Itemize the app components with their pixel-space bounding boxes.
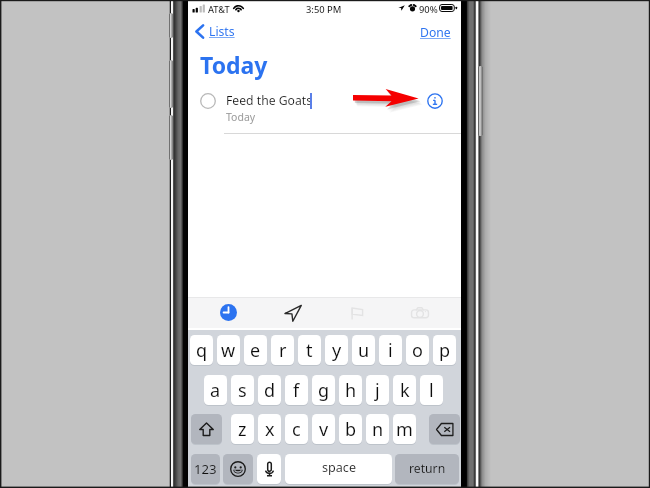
- button[interactable]: space: [285, 454, 392, 484]
- button[interactable]: [429, 414, 460, 444]
- staticText: g: [318, 378, 330, 403]
- staticText: y: [332, 338, 342, 363]
- staticText: space: [322, 459, 356, 476]
- button[interactable]: Remind me at a location: [271, 297, 315, 328]
- button[interactable]: h: [339, 375, 362, 405]
- staticText: h: [345, 378, 357, 403]
- staticText: Today: [200, 49, 268, 80]
- button[interactable]: Lists: [191, 21, 239, 42]
- button[interactable]: m: [393, 414, 416, 444]
- button[interactable]: Add photo: [398, 297, 442, 328]
- button[interactable]: z: [231, 414, 254, 444]
- staticText: i: [388, 338, 393, 363]
- button[interactable]: 123: [191, 454, 220, 484]
- staticText: q: [196, 338, 208, 363]
- button[interactable]: Flag: [335, 297, 379, 328]
- staticText: 3:50 PM: [306, 3, 342, 16]
- button[interactable]: c: [285, 414, 308, 444]
- staticText: m: [396, 417, 413, 442]
- staticText: r: [279, 338, 287, 363]
- button[interactable]: Done: [416, 22, 455, 43]
- staticText: j: [375, 378, 380, 403]
- button[interactable]: r: [271, 335, 294, 365]
- staticText: u: [358, 338, 370, 363]
- button[interactable]: d: [258, 375, 281, 405]
- button[interactable]: j: [366, 375, 389, 405]
- staticText: return: [409, 460, 446, 477]
- staticText: v: [319, 417, 329, 442]
- staticText: Lists: [209, 23, 235, 40]
- staticText: Feed the Goats: [226, 92, 313, 109]
- button[interactable]: v: [312, 414, 335, 444]
- button[interactable]: k: [393, 375, 416, 405]
- staticText: b: [345, 417, 357, 442]
- button[interactable]: o: [406, 335, 429, 365]
- staticText: l: [429, 378, 434, 403]
- staticText: f: [293, 378, 300, 403]
- button[interactable]: y: [325, 335, 348, 365]
- staticText: AT&T: [208, 3, 230, 16]
- staticText: c: [292, 417, 301, 442]
- staticText: p: [439, 338, 451, 363]
- staticText: e: [250, 338, 261, 363]
- button[interactable]: l: [420, 375, 443, 405]
- button[interactable]: q: [190, 335, 213, 365]
- button[interactable]: Remind me on a day: [206, 297, 250, 328]
- button[interactable]: p: [433, 335, 456, 365]
- button[interactable]: [223, 454, 253, 484]
- button[interactable]: Details: [427, 93, 443, 109]
- button[interactable]: a: [204, 375, 227, 405]
- button[interactable]: n: [366, 414, 389, 444]
- button[interactable]: return: [395, 454, 459, 484]
- button[interactable]: g: [312, 375, 335, 405]
- button[interactable]: e: [244, 335, 267, 365]
- staticText: s: [238, 378, 247, 403]
- staticText: a: [210, 378, 221, 403]
- staticText: 123: [194, 460, 217, 478]
- button[interactable]: w: [217, 335, 240, 365]
- staticText: 90%: [419, 3, 438, 16]
- staticText: n: [372, 417, 384, 442]
- staticText: o: [412, 338, 423, 363]
- staticText: z: [238, 417, 247, 442]
- button[interactable]: f: [285, 375, 308, 405]
- button[interactable]: s: [231, 375, 254, 405]
- staticText: w: [221, 338, 236, 363]
- staticText: t: [306, 338, 313, 363]
- button[interactable]: [257, 454, 281, 484]
- staticText: Today: [226, 110, 256, 124]
- staticText: k: [400, 378, 410, 403]
- staticText: x: [265, 417, 275, 442]
- button[interactable]: u: [352, 335, 375, 365]
- staticText: d: [264, 378, 276, 403]
- button[interactable]: x: [258, 414, 281, 444]
- button[interactable]: b: [339, 414, 362, 444]
- staticText: Done: [420, 24, 451, 41]
- button[interactable]: [191, 414, 222, 444]
- button[interactable]: i: [379, 335, 402, 365]
- button[interactable]: t: [298, 335, 321, 365]
